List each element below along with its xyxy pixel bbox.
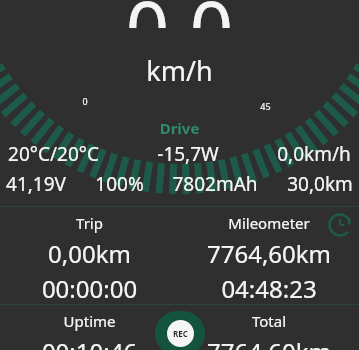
staticText: Trip <box>0 213 179 233</box>
staticText: 0,00km <box>0 237 179 270</box>
staticText: 20°C/20°C <box>8 141 99 167</box>
staticText: Uptime <box>0 311 179 331</box>
staticText: 30,0km <box>287 171 353 197</box>
staticText: 0 <box>82 95 88 107</box>
staticText: 0,0 <box>0 0 359 28</box>
staticText: Drive <box>0 118 359 138</box>
staticText: km/h <box>0 52 359 89</box>
staticText: 00:10:46 <box>0 335 179 350</box>
staticText: 7764,60km <box>179 335 359 350</box>
staticText: -15,7W <box>157 141 219 167</box>
staticText: 7802mAh <box>172 171 258 197</box>
button[interactable]: Record <box>155 311 205 350</box>
staticText: Total <box>179 311 359 331</box>
staticText: 00:00:00 <box>0 272 179 304</box>
button[interactable]: Reset trip <box>327 212 353 238</box>
staticText: REC <box>173 328 188 339</box>
staticText: 41,19V <box>6 171 66 197</box>
staticText: 04:48:23 <box>179 272 359 304</box>
staticText: 7764,60km <box>179 237 359 270</box>
staticText: Mileometer <box>179 213 359 233</box>
staticText: 45 <box>260 100 271 112</box>
staticText: 100% <box>95 171 144 197</box>
staticText: 0,0km/h <box>277 141 351 167</box>
